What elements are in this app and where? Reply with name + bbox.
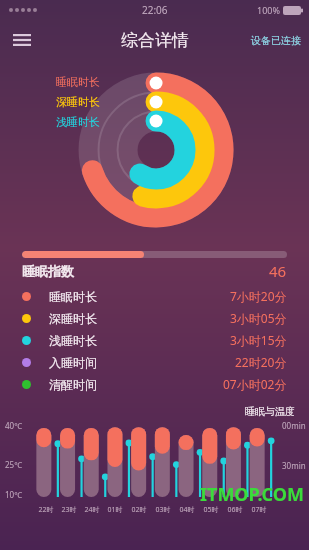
staticText: 23时 bbox=[61, 505, 77, 515]
button[interactable]: 入睡时间 bbox=[22, 351, 287, 373]
staticText: 深睡时长 bbox=[49, 311, 97, 326]
staticText: 100% bbox=[257, 4, 280, 16]
staticText: 22时 bbox=[38, 505, 54, 515]
staticText: 深睡时长 bbox=[56, 95, 100, 109]
staticText: 22时20分 bbox=[235, 354, 287, 370]
staticText: 7小时20分 bbox=[230, 288, 287, 304]
staticText: ITMOP.COM bbox=[200, 482, 305, 507]
button[interactable]: 深睡时长 bbox=[22, 307, 287, 329]
staticText: 02时 bbox=[131, 505, 147, 515]
staticText: 07时 bbox=[251, 505, 267, 515]
staticText: 浅睡时长 bbox=[56, 115, 100, 129]
staticText: 25℃ bbox=[5, 459, 23, 470]
staticText: 04时 bbox=[179, 505, 195, 515]
button[interactable]: 浅睡时长 bbox=[22, 329, 287, 351]
staticText: 10℃ bbox=[5, 489, 23, 500]
staticText: 01时 bbox=[107, 505, 123, 515]
staticText: 清醒时间 bbox=[49, 377, 97, 392]
staticText: 00min bbox=[282, 420, 306, 431]
staticText: 睡眠时长 bbox=[49, 289, 97, 304]
staticText: 03时 bbox=[155, 505, 171, 515]
button[interactable]: 设备已连接 bbox=[251, 34, 301, 47]
staticText: 22:06 bbox=[142, 3, 168, 17]
staticText: 浅睡时长 bbox=[49, 333, 97, 348]
staticText: 设备已连接 bbox=[251, 34, 301, 47]
button[interactable]: 睡眠时长 bbox=[22, 285, 287, 307]
staticText: 40℃ bbox=[5, 420, 23, 431]
staticText: 睡眠指数 bbox=[22, 263, 74, 279]
staticText: 05时 bbox=[203, 505, 219, 515]
staticText: 睡眠与温度 bbox=[245, 405, 295, 418]
staticText: 3小时05分 bbox=[230, 310, 287, 326]
staticText: 24时 bbox=[84, 505, 100, 515]
staticText: 睡眠时长 bbox=[56, 75, 100, 89]
button[interactable]: 清醒时间 bbox=[22, 373, 287, 395]
staticText: 06时 bbox=[227, 505, 243, 515]
staticText: 46 bbox=[269, 261, 287, 281]
staticText: 30min bbox=[282, 460, 306, 471]
button[interactable]: Menu bbox=[8, 26, 36, 54]
staticText: 综合详情 bbox=[121, 30, 189, 51]
staticText: 入睡时间 bbox=[49, 355, 97, 370]
staticText: 07小时02分 bbox=[223, 376, 287, 392]
staticText: 3小时15分 bbox=[230, 332, 287, 348]
